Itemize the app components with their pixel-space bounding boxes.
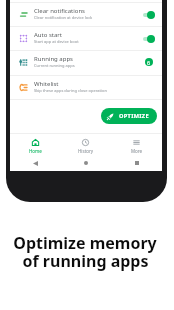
- button[interactable]: Home: [81, 158, 91, 168]
- button[interactable]: More: [111, 134, 162, 154]
- button[interactable]: Whitelist: [10, 75, 162, 99]
- button[interactable]: History: [60, 134, 111, 154]
- button[interactable]: Clear notifications: [10, 2, 162, 27]
- staticText: Skip these apps during close operation: [34, 88, 107, 93]
- staticText: Whitelist: [34, 80, 59, 88]
- staticText: OPTIMIZE: [119, 112, 149, 120]
- button[interactable]: Running apps: [10, 50, 162, 74]
- button[interactable]: Home: [10, 134, 60, 154]
- button[interactable]: Toggle Clear notifications: [143, 10, 155, 19]
- staticText: Optimize memory: [13, 232, 157, 254]
- staticText: History: [78, 148, 94, 154]
- button[interactable]: Recents: [132, 158, 142, 168]
- staticText: Running apps: [34, 55, 73, 63]
- staticText: Clear notifications: [34, 7, 85, 15]
- staticText: Home: [29, 148, 42, 154]
- staticText: 6: [147, 59, 151, 66]
- button[interactable]: Toggle Auto start: [143, 34, 155, 43]
- staticText: Current running apps: [34, 63, 75, 68]
- staticText: Clear notification at device lock: [34, 15, 93, 20]
- staticText: Start app at device boot: [34, 39, 79, 44]
- staticText: Auto start: [34, 31, 62, 39]
- button[interactable]: OPTIMIZE: [101, 108, 157, 124]
- button[interactable]: Auto start: [10, 26, 162, 50]
- button[interactable]: Back: [30, 158, 40, 168]
- staticText: of running apps: [22, 250, 149, 272]
- staticText: More: [131, 148, 143, 154]
